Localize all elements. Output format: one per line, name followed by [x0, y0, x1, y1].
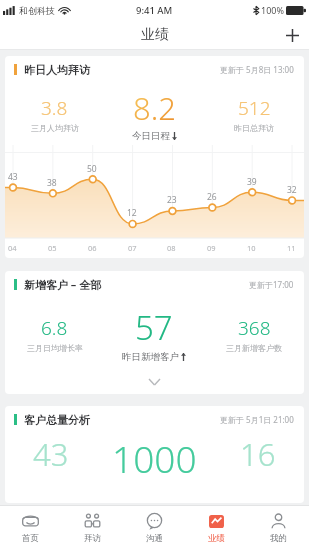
staticText: 首页	[22, 533, 39, 544]
button[interactable]: Add	[275, 20, 309, 50]
button[interactable]: Expand	[5, 370, 304, 394]
staticText: 更新于 5月1日 21:00	[220, 414, 294, 425]
staticText: 三月人均拜访	[31, 123, 79, 133]
staticText: 32	[287, 184, 297, 196]
staticText: 368	[238, 315, 271, 341]
staticText: 06	[88, 243, 97, 253]
staticText: 更新于17:00	[249, 279, 294, 290]
staticText: 业绩	[141, 26, 169, 44]
button[interactable]: 沟通	[123, 506, 185, 550]
staticText: 09	[207, 243, 216, 253]
staticText: 10	[247, 243, 256, 253]
staticText: 16	[240, 433, 276, 475]
staticText: 新增客户 – 全部	[24, 277, 102, 292]
staticText: 23	[167, 194, 177, 206]
staticText: 今日日程	[132, 130, 170, 142]
button[interactable]: 我的	[247, 506, 309, 550]
button[interactable]: 拜访	[61, 506, 123, 550]
staticText: 26	[207, 191, 217, 203]
staticText: 05	[48, 243, 57, 253]
staticText: 8.2	[133, 87, 176, 129]
staticText: 100%	[261, 4, 284, 16]
staticText: 08	[167, 243, 176, 253]
staticText: 38	[47, 177, 57, 189]
staticText: 1000	[112, 433, 197, 483]
staticText: 我的	[270, 533, 287, 544]
staticText: 6.8	[41, 315, 68, 341]
staticText: 07	[128, 243, 137, 253]
staticText: 更新于 5月8日 13:00	[220, 64, 294, 75]
button[interactable]: 业绩	[185, 506, 247, 550]
staticText: 昨日人均拜访	[24, 63, 90, 77]
staticText: 9:41 AM	[136, 4, 173, 17]
staticText: 50	[87, 163, 97, 175]
staticText: 沟通	[146, 533, 163, 544]
staticText: 客户总量分析	[24, 413, 90, 427]
button[interactable]: 客户总量分析	[5, 406, 304, 503]
staticText: 12	[127, 207, 137, 219]
button[interactable]: 昨日人均拜访	[5, 56, 304, 258]
staticText: 拜访	[84, 533, 101, 544]
staticText: 11	[287, 243, 296, 253]
button[interactable]: 新增客户 – 全部	[5, 271, 304, 394]
staticText: 业绩	[208, 533, 225, 544]
staticText: 昨日新增客户	[122, 351, 179, 363]
staticText: 512	[238, 95, 271, 121]
staticText: 三月新增客户数	[226, 343, 282, 353]
staticText: 43	[8, 171, 18, 183]
staticText: 和创科技	[19, 5, 55, 16]
staticText: 43	[33, 433, 69, 475]
button[interactable]: 首页	[0, 506, 61, 550]
staticText: 04	[8, 243, 17, 253]
staticText: 3.8	[41, 95, 68, 121]
staticText: 57	[135, 305, 173, 350]
staticText: 39	[247, 176, 257, 188]
staticText: 三月日均增长率	[27, 343, 83, 353]
staticText: 昨日总拜访	[234, 123, 274, 133]
